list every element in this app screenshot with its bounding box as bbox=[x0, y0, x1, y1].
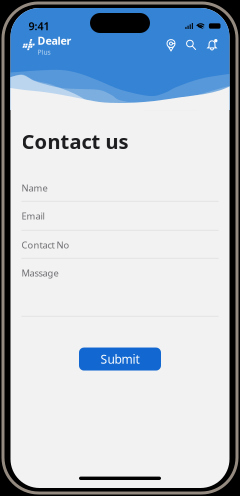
staticText: Plus bbox=[37, 48, 50, 57]
staticText: Submit bbox=[100, 351, 139, 367]
staticText: Massage bbox=[21, 267, 58, 279]
staticText: Name bbox=[21, 182, 47, 194]
staticText: 9:41 bbox=[28, 19, 49, 33]
button[interactable]: Notifications bbox=[201, 36, 222, 54]
staticText: Dealer bbox=[37, 33, 71, 48]
staticText: Contact us bbox=[21, 128, 128, 155]
staticText: Contact No bbox=[21, 239, 69, 251]
staticText: Email bbox=[21, 210, 44, 222]
button[interactable]: Submit bbox=[79, 348, 161, 371]
button[interactable]: Location bbox=[161, 36, 180, 54]
button[interactable]: Search bbox=[180, 36, 201, 54]
